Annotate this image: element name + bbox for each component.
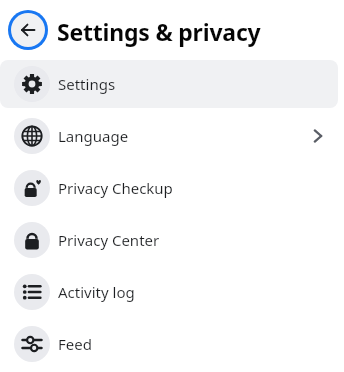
- staticText: Privacy Center: [58, 230, 160, 250]
- staticText: Feed: [58, 334, 92, 354]
- staticText: Activity log: [58, 282, 135, 302]
- staticText: Language: [58, 126, 129, 146]
- button[interactable]: Settings: [0, 60, 338, 108]
- button[interactable]: Activity log: [0, 268, 338, 316]
- button[interactable]: Feed: [0, 320, 338, 368]
- button[interactable]: Language: [0, 112, 338, 160]
- button[interactable]: Back: [8, 10, 48, 50]
- staticText: Privacy Checkup: [58, 178, 173, 198]
- button[interactable]: Privacy Checkup: [0, 164, 338, 212]
- staticText: Settings & privacy: [57, 16, 261, 47]
- staticText: Settings: [58, 74, 116, 94]
- button[interactable]: Privacy Center: [0, 216, 338, 264]
